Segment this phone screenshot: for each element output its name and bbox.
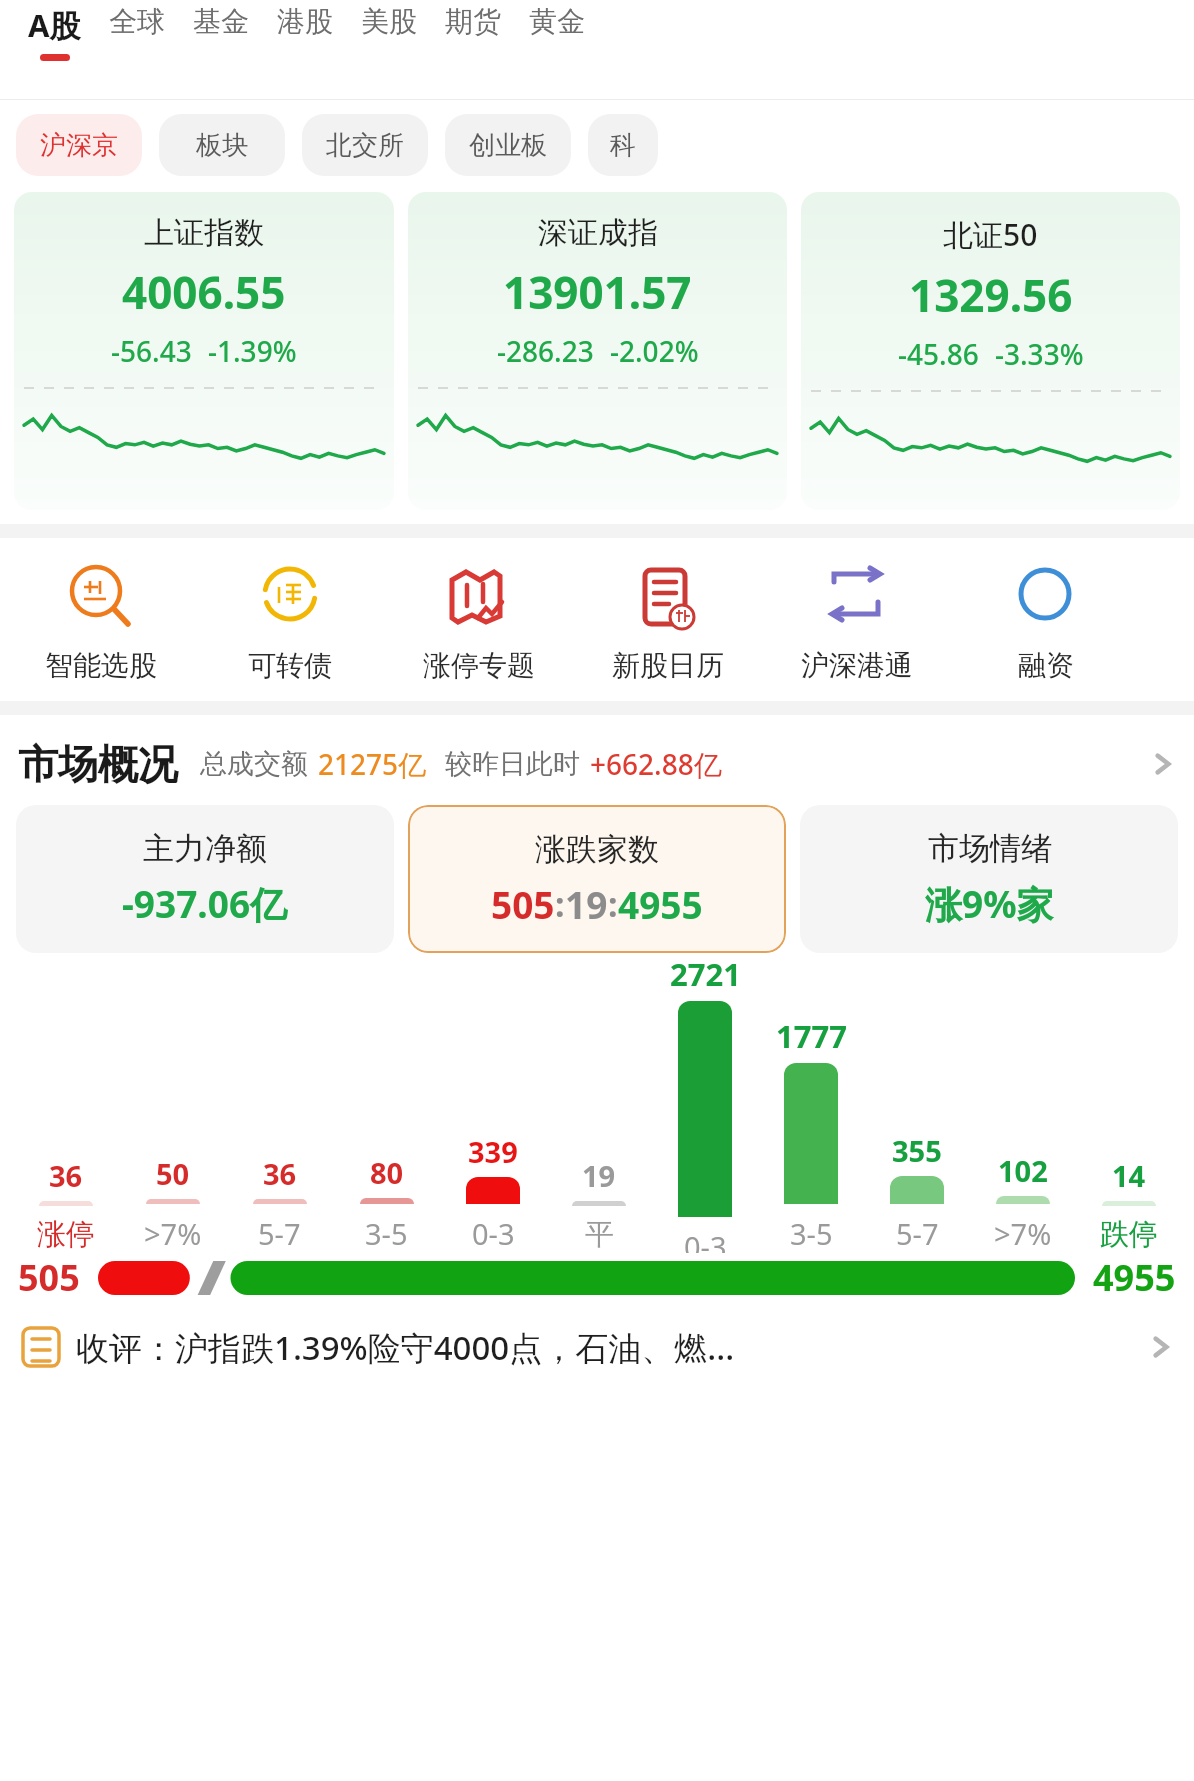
staticText: 13901.57 — [503, 262, 692, 322]
staticText: 市场概况 — [18, 739, 178, 789]
staticText: 0-3 — [684, 1227, 727, 1253]
staticText: 收评：沪指跌1.39%险守4000点，石油、燃... — [76, 1325, 735, 1370]
button[interactable]: 黄金 — [515, 4, 599, 47]
staticText: 355 — [892, 1131, 942, 1170]
staticText: 主力净额 — [143, 829, 267, 868]
button[interactable]: 北证50 — [801, 192, 1180, 510]
staticText: 2721 — [670, 953, 741, 995]
staticText: 智能选股 — [45, 648, 157, 683]
button[interactable]: 上证指数 — [14, 192, 394, 510]
staticText: 涨9%家 — [925, 878, 1054, 929]
staticText: 5-7 — [258, 1214, 301, 1253]
staticText: 沪深京 — [40, 129, 118, 162]
other: Open news — [1146, 1332, 1176, 1362]
staticText: 全球 — [109, 4, 165, 39]
staticText: 21275亿 — [318, 745, 427, 783]
staticText: 36 — [263, 1154, 297, 1193]
staticText: 19 — [565, 879, 608, 929]
other: More — [1148, 749, 1178, 779]
staticText: 基金 — [193, 4, 249, 39]
staticText: >7% — [994, 1214, 1052, 1253]
button[interactable]: 可转债 — [195, 560, 384, 683]
staticText: 北证50 — [943, 214, 1038, 255]
staticText: 4006.55 — [122, 262, 286, 322]
button[interactable]: 涨停专题 — [384, 560, 573, 683]
staticText: 1329.56 — [909, 265, 1073, 325]
staticText: 期货 — [445, 4, 501, 39]
staticText: +662.88亿 — [590, 745, 722, 783]
staticText: 50 — [156, 1154, 190, 1193]
staticText: 上证指数 — [144, 214, 264, 252]
staticText: -2.02% — [610, 332, 699, 370]
staticText: : — [608, 881, 618, 927]
button[interactable]: 美股 — [347, 4, 431, 47]
staticText: 36 — [49, 1156, 83, 1195]
staticText: 3-5 — [790, 1214, 833, 1253]
button[interactable]: 市场概况 — [0, 715, 1194, 805]
button[interactable]: 板块 — [159, 114, 285, 176]
button[interactable]: 收评：沪指跌1.39%险守4000点，石油、燃... — [0, 1316, 1194, 1378]
button[interactable]: 深证成指 — [408, 192, 787, 510]
staticText: >7% — [144, 1214, 202, 1253]
staticText: 4955 — [1093, 1253, 1176, 1302]
button[interactable]: 科 — [588, 114, 658, 176]
button[interactable]: 市场情绪 — [800, 805, 1178, 953]
button[interactable]: 新股日历 — [573, 560, 762, 683]
staticText: 黄金 — [529, 4, 585, 39]
button[interactable]: 港股 — [263, 4, 347, 47]
staticText: 0-3 — [472, 1214, 515, 1253]
staticText: 北交所 — [326, 129, 404, 162]
staticText: 505 — [491, 879, 555, 929]
staticText: -937.06亿 — [122, 878, 288, 929]
staticText: -45.86 — [898, 335, 979, 373]
button[interactable]: 智能选股 — [6, 560, 195, 683]
button[interactable]: 涨跌家数 — [408, 805, 786, 953]
button[interactable]: 沪深京 — [16, 114, 142, 176]
staticText: 跌停 — [1100, 1216, 1158, 1253]
staticText: 339 — [468, 1132, 518, 1171]
staticText: 4955 — [618, 879, 703, 929]
staticText: 505 — [18, 1253, 80, 1302]
staticText: 融资 — [1018, 648, 1074, 683]
staticText: 总成交额 — [200, 747, 308, 781]
button[interactable]: 北交所 — [302, 114, 428, 176]
staticText: 美股 — [361, 4, 417, 39]
staticText: : — [555, 881, 565, 927]
staticText: A股 — [28, 4, 81, 46]
staticText: -3.33% — [995, 335, 1084, 373]
staticText: 5-7 — [896, 1214, 939, 1253]
staticText: 创业板 — [469, 129, 547, 162]
staticText: -56.43 — [111, 332, 192, 370]
staticText: -286.23 — [497, 332, 594, 370]
staticText: 较昨日此时 — [445, 747, 580, 781]
staticText: 板块 — [196, 129, 248, 162]
button[interactable]: 全球 — [95, 4, 179, 47]
staticText: 80 — [370, 1153, 404, 1192]
staticText: 可转债 — [248, 648, 332, 683]
staticText: 14 — [1112, 1156, 1146, 1195]
button[interactable]: 主力净额 — [16, 805, 394, 953]
staticText: 港股 — [277, 4, 333, 39]
button[interactable]: 基金 — [179, 4, 263, 47]
staticText: 涨停 — [37, 1216, 95, 1253]
staticText: 1777 — [776, 1015, 847, 1057]
button[interactable]: 沪深港通 — [762, 560, 951, 683]
staticText: 沪深港通 — [801, 648, 913, 683]
button[interactable]: A股 — [14, 4, 95, 61]
staticText: 市场情绪 — [928, 829, 1052, 868]
staticText: 涨停专题 — [423, 648, 535, 683]
button[interactable]: 融资 — [951, 560, 1140, 683]
staticText: -1.39% — [208, 332, 297, 370]
staticText: 102 — [998, 1151, 1048, 1190]
staticText: 新股日历 — [612, 648, 724, 683]
staticText: 涨跌家数 — [535, 830, 659, 869]
staticText: 平 — [585, 1216, 614, 1253]
button[interactable]: 创业板 — [445, 114, 571, 176]
staticText: 3-5 — [365, 1214, 408, 1253]
button[interactable]: 期货 — [431, 4, 515, 47]
staticText: 深证成指 — [538, 214, 658, 252]
staticText: 科 — [610, 129, 636, 162]
staticText: 19 — [582, 1156, 616, 1195]
